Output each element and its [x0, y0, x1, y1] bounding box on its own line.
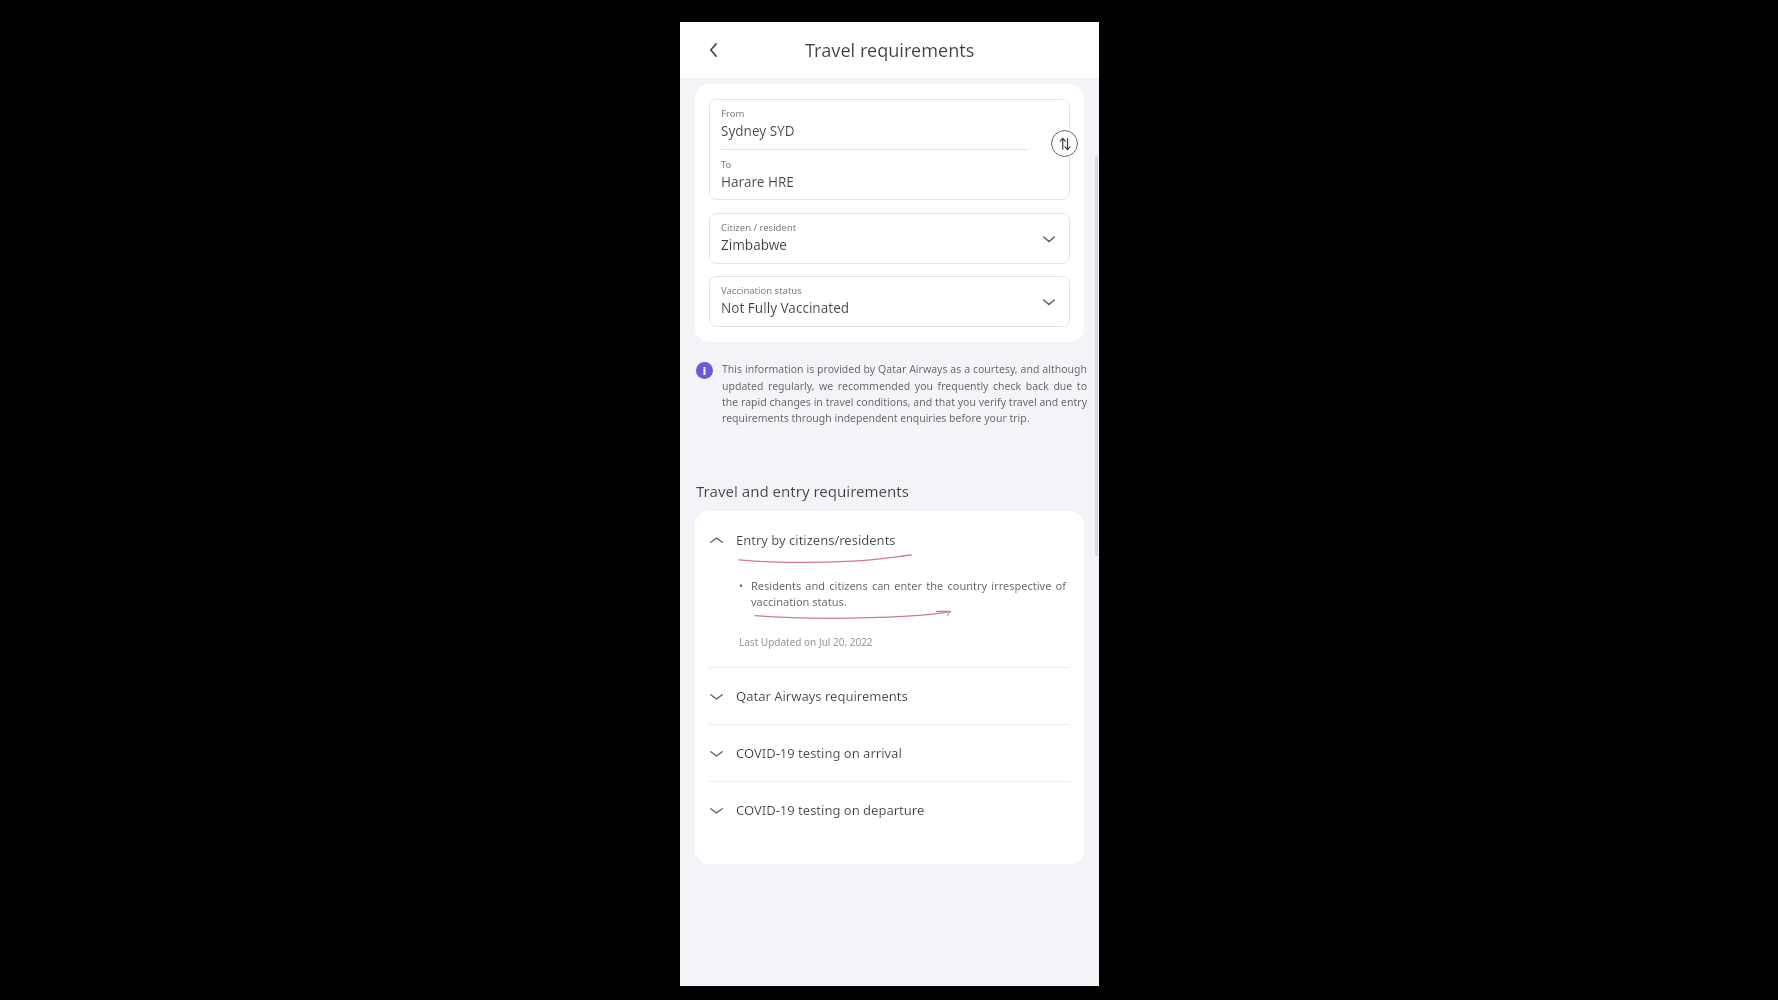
button[interactable]: COVID-19 testing on arrival	[695, 725, 1084, 781]
staticText: Citizen / resident	[721, 221, 797, 234]
staticText: Entry by citizens/residents	[736, 531, 896, 549]
staticText: COVID-19 testing on arrival	[736, 744, 902, 762]
staticText: Travel requirements	[805, 38, 975, 63]
staticText: •	[739, 578, 744, 593]
button[interactable]: Citizen / resident	[709, 213, 1070, 264]
staticText: Zimbabwe	[721, 236, 787, 254]
button[interactable]: To	[709, 150, 1070, 200]
staticText: From	[721, 107, 745, 120]
staticText: Not Fully Vaccinated	[721, 299, 850, 317]
button[interactable]: From	[709, 99, 1070, 149]
staticText: This information is provided by Qatar Ai…	[722, 362, 1087, 425]
staticText: COVID-19 testing on departure	[736, 801, 925, 819]
staticText: Residents and citizens can enter the cou…	[751, 578, 1066, 609]
button[interactable]: Back	[694, 30, 734, 70]
staticText: Travel and entry requirements	[696, 481, 909, 501]
button[interactable]: Vaccination status	[709, 276, 1070, 327]
staticText: To	[721, 158, 732, 171]
staticText: Last Updated on Jul 20, 2022	[739, 635, 873, 649]
button[interactable]: Entry by citizens/residents	[695, 511, 1084, 564]
staticText: Qatar Airways requirements	[736, 687, 908, 705]
button[interactable]: COVID-19 testing on departure	[695, 782, 1084, 838]
staticText: Sydney SYD	[721, 122, 795, 140]
staticText: Vaccination status	[721, 284, 802, 297]
button[interactable]: Swap origin and destination	[1051, 130, 1078, 157]
button[interactable]: Qatar Airways requirements	[695, 668, 1084, 724]
staticText: Harare HRE	[721, 173, 794, 191]
staticText: i	[703, 364, 706, 378]
